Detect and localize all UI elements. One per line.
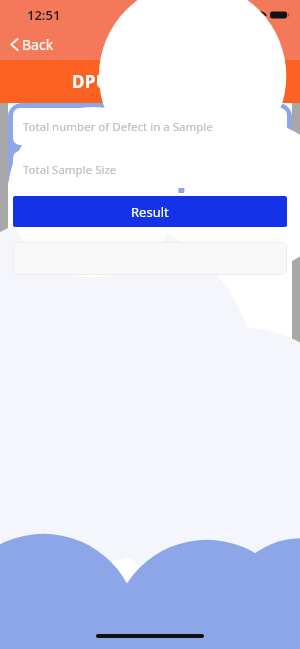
staticText: DPU CALCULATOR <box>72 70 228 93</box>
button[interactable]: Total number of Defect in a Sample <box>13 108 287 145</box>
staticText: Total number of Defect in a Sample <box>23 119 213 135</box>
button[interactable]: Result <box>13 196 287 227</box>
button[interactable]: Total Sample Size <box>13 151 287 188</box>
button[interactable]: Back <box>6 31 58 58</box>
staticText: Result <box>131 203 169 221</box>
staticText: 12:51 <box>27 6 61 24</box>
staticText: Total Sample Size <box>23 162 117 178</box>
staticText: Back <box>22 35 54 54</box>
